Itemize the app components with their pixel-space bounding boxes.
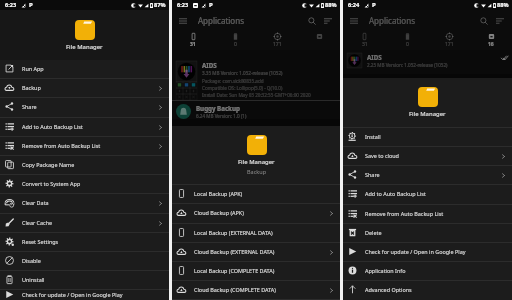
staticText: Compatible OS: Lollipop(5.0) - Q(10.0) (202, 85, 283, 91)
staticText: Local Backup (APK) (194, 190, 243, 197)
button[interactable]: Run App (0, 60, 169, 79)
staticText: 2.25 MB Version: 1.052-release (1052) (367, 62, 448, 68)
button[interactable]: Tab 2 (214, 31, 256, 50)
staticText: 6.24 MB Version: 1.0 (1) (196, 113, 247, 119)
button[interactable]: Buggy Backup (172, 101, 340, 119)
button[interactable]: Install (343, 128, 512, 147)
staticText: Remove from Auto Backup List (365, 210, 444, 217)
button[interactable]: Share (343, 166, 512, 185)
staticText: 6:23 (177, 1, 189, 9)
staticText: Cloud Backup (EXTERNAL DATA) (194, 248, 275, 255)
button[interactable]: Add to Auto Backup List (0, 118, 169, 137)
button[interactable]: Clear Data (0, 194, 169, 214)
staticText: 6:23 (5, 1, 17, 9)
staticText: Package: com.sick80835.add (202, 78, 264, 84)
button[interactable]: Save to cloud (343, 147, 512, 166)
staticText: 171 (273, 41, 282, 48)
button[interactable]: Share (0, 98, 169, 118)
button[interactable]: Check for update / Open in Google Play (0, 290, 169, 300)
staticText: Reset Settings (22, 238, 59, 245)
staticText: 0 (406, 41, 409, 48)
staticText: 88% (497, 1, 509, 9)
button[interactable]: Disable (0, 252, 169, 271)
staticText: P (29, 1, 33, 9)
staticText: P (372, 1, 376, 9)
button[interactable]: AIDS (343, 50, 512, 74)
button[interactable]: Local Backup (COMPLETE DATA) (172, 262, 340, 281)
staticText: Add to Auto Backup List (365, 190, 426, 197)
staticText: Install Date: Sun May 03 20:32:55 GMT+06… (202, 92, 311, 98)
button[interactable]: Add to Auto Backup List (343, 185, 512, 205)
staticText: 16 (488, 41, 494, 48)
button[interactable]: Remove from Auto Backup List (343, 205, 512, 224)
button[interactable]: Check for update / Open in Google Play (343, 243, 512, 262)
staticText: AIDS (367, 53, 382, 61)
button[interactable]: Tab 1 (343, 31, 386, 50)
staticText: Applications (369, 15, 415, 26)
button[interactable]: Delete (343, 224, 512, 243)
staticText: Delete (365, 229, 382, 236)
button[interactable]: Search (306, 15, 318, 27)
staticText: File Manager (409, 110, 446, 118)
staticText: Buggy Backup (196, 104, 240, 112)
staticText: Application Info (365, 267, 406, 274)
button[interactable]: Tab 3 (256, 31, 298, 50)
staticText: Advanced Options (365, 286, 412, 293)
staticText: 171 (445, 41, 454, 48)
button[interactable]: Sort (494, 15, 506, 27)
staticText: Backup (247, 168, 267, 175)
button[interactable]: Cloud Backup (COMPLETE DATA) (172, 281, 340, 300)
staticText: 0 (234, 41, 237, 48)
staticText: 88% (325, 1, 337, 9)
staticText: Convert to System App (22, 180, 81, 187)
staticText: Cloud Backup (APK) (194, 209, 244, 216)
button[interactable]: Tab 2 (386, 31, 428, 50)
button[interactable]: Menu (348, 15, 360, 27)
staticText: Local Backup (COMPLETE DATA) (194, 267, 275, 274)
button[interactable]: Application Info (343, 262, 512, 281)
button[interactable]: Remove from Auto Backup List (0, 137, 169, 156)
staticText: Check for update / Open in Google Play (22, 291, 123, 298)
button[interactable]: Tab 1 (172, 31, 214, 50)
button[interactable]: Backup (0, 79, 169, 98)
staticText: Add to Auto Backup List (22, 123, 83, 130)
staticText: 6:24 (348, 1, 360, 9)
staticText: Save to cloud (365, 152, 399, 159)
button[interactable]: Copy Package Name (0, 156, 169, 175)
button[interactable]: AIDS (172, 50, 340, 100)
staticText: Run App (22, 65, 44, 72)
staticText: Uninstall (22, 276, 45, 283)
staticText: Local Backup (EXTERNAL DATA) (194, 229, 273, 236)
staticText: 3.35 MB Version: 1.052-release (1052) (202, 70, 283, 76)
staticText: AIDS (202, 61, 217, 69)
staticText: P (209, 1, 213, 9)
button[interactable]: Tab 4 (470, 31, 512, 50)
staticText: Clear Data (22, 199, 49, 206)
button[interactable]: Advanced Options (343, 281, 512, 300)
button[interactable]: Local Backup (EXTERNAL DATA) (172, 224, 340, 243)
button[interactable]: Cloud Backup (EXTERNAL DATA) (172, 243, 340, 262)
button[interactable]: Local Backup (APK) (172, 185, 340, 204)
staticText: Install (365, 133, 381, 140)
button[interactable]: Sort (322, 15, 334, 27)
staticText: Disable (22, 257, 41, 264)
staticText: Share (22, 103, 37, 110)
staticText: File Manager (66, 43, 103, 51)
button[interactable]: Clear Cache (0, 214, 169, 233)
staticText: Remove from Auto Backup List (22, 142, 101, 149)
button[interactable]: Cloud Backup (APK) (172, 204, 340, 224)
button[interactable]: Tab 4 (298, 31, 340, 50)
staticText: Copy Package Name (22, 161, 75, 168)
staticText: 31 (362, 41, 368, 48)
staticText: Share (365, 171, 380, 178)
staticText: 87% (154, 1, 166, 9)
staticText: Clear Cache (22, 219, 53, 226)
staticText: Applications (198, 15, 244, 26)
button[interactable]: Convert to System App (0, 175, 169, 194)
button[interactable]: Search (478, 15, 490, 27)
button[interactable]: Menu (177, 15, 189, 27)
button[interactable]: Uninstall (0, 271, 169, 290)
button[interactable]: Tab 3 (428, 31, 470, 50)
button[interactable]: Reset Settings (0, 233, 169, 252)
staticText: Backup (22, 84, 41, 91)
